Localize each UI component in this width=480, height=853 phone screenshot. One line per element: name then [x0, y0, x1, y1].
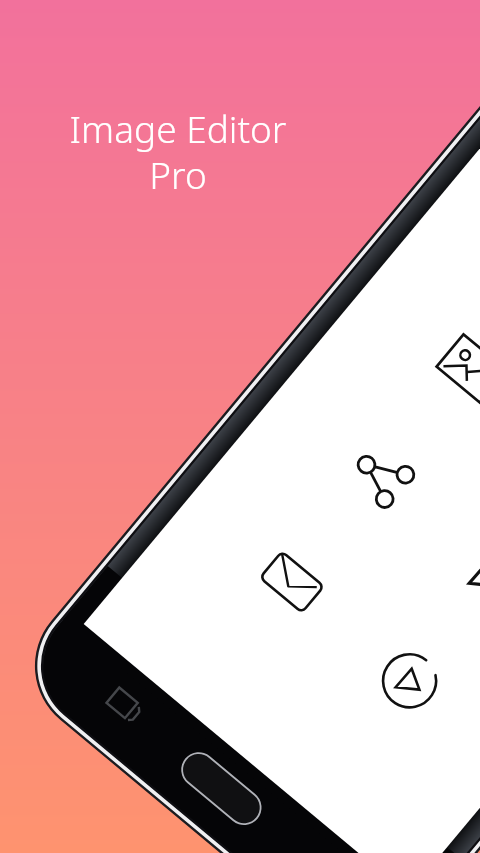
staticText: Image Editor Pro	[38, 103, 318, 200]
